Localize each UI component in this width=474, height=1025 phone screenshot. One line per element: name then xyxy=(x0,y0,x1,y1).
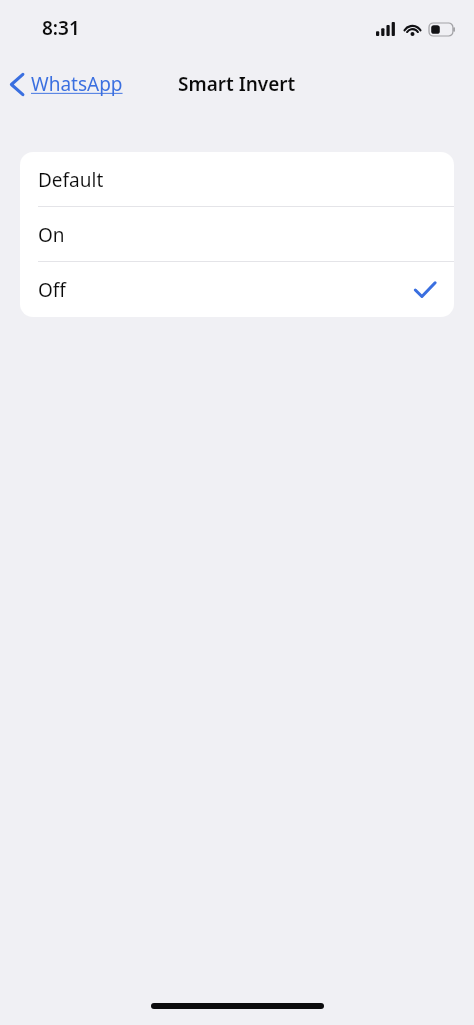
staticText: Off xyxy=(38,277,66,303)
staticText: WhatsApp xyxy=(31,71,123,97)
other: Back xyxy=(10,73,24,96)
button[interactable]: Back xyxy=(0,65,133,103)
button[interactable]: On xyxy=(20,207,454,262)
staticText: 8:31 xyxy=(42,15,80,41)
staticText: On xyxy=(38,222,65,248)
button[interactable]: Off xyxy=(20,262,454,317)
staticText: Default xyxy=(38,167,104,193)
staticText: Smart Invert xyxy=(178,71,296,97)
button[interactable]: Default xyxy=(20,152,454,207)
